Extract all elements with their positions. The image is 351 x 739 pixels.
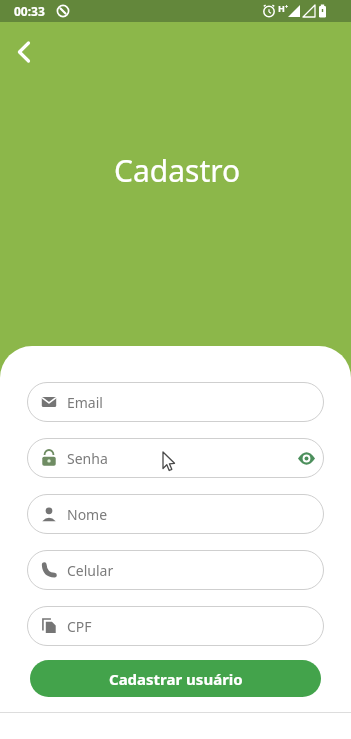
staticText: Email: [67, 393, 103, 412]
button[interactable]: Nome: [27, 494, 324, 534]
staticText: H⁺: [278, 2, 289, 14]
staticText: Cadastro: [114, 150, 241, 191]
button[interactable]: Cadastrar usuário: [30, 660, 321, 697]
button[interactable]: Senha: [27, 438, 324, 478]
staticText: Nome: [67, 505, 108, 524]
button[interactable]: Email: [27, 382, 324, 422]
button[interactable]: Celular: [27, 550, 324, 590]
staticText: Celular: [67, 561, 114, 580]
button[interactable]: CPF: [27, 606, 324, 646]
staticText: CPF: [67, 617, 92, 636]
staticText: Cadastrar usuário: [109, 669, 243, 689]
button[interactable]: [5, 38, 45, 66]
staticText: Senha: [67, 449, 108, 468]
staticText: 00:33: [14, 3, 45, 19]
